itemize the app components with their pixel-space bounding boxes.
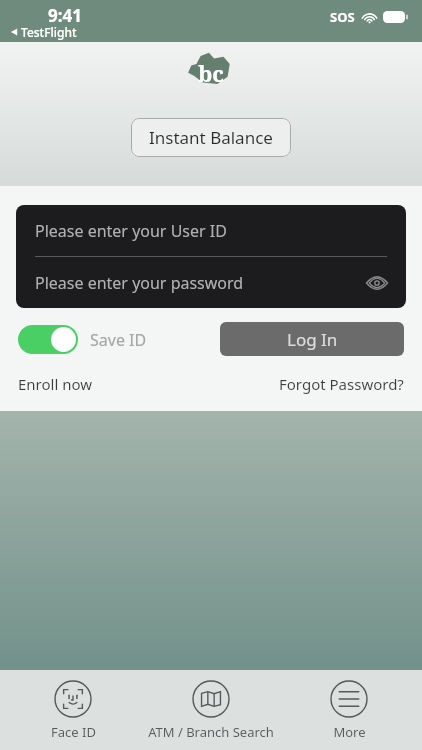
staticText: 9:41 (48, 4, 82, 27)
staticText: More (333, 723, 366, 741)
button[interactable]: Log In (220, 322, 404, 356)
staticText: Save ID (90, 329, 147, 351)
staticText: Face ID (51, 723, 96, 741)
staticText: Enroll now (18, 374, 93, 394)
staticText: Please enter your User ID (35, 220, 227, 242)
button[interactable]: ATM / Branch Search (146, 670, 276, 741)
button[interactable]: Instant Balance (131, 118, 291, 157)
button[interactable]: More (284, 670, 414, 741)
button[interactable]: Show password (362, 268, 392, 298)
staticText: Instant Balance (149, 126, 273, 149)
staticText: Log In (287, 328, 338, 351)
staticText: TestFlight (21, 24, 77, 40)
button[interactable]: Enroll now (18, 374, 93, 394)
staticText: Forgot Password? (279, 374, 404, 394)
staticText: ATM / Branch Search (148, 723, 274, 741)
button[interactable]: Please enter your User ID (16, 205, 406, 256)
button[interactable]: Forgot Password? (279, 374, 404, 394)
staticText: SOS (330, 8, 355, 26)
button[interactable]: Please enter your password (16, 257, 406, 308)
button[interactable]: Save ID (18, 325, 147, 354)
staticText: Please enter your password (35, 272, 244, 294)
button[interactable]: Face ID (8, 670, 138, 741)
staticText: bc (198, 58, 224, 88)
